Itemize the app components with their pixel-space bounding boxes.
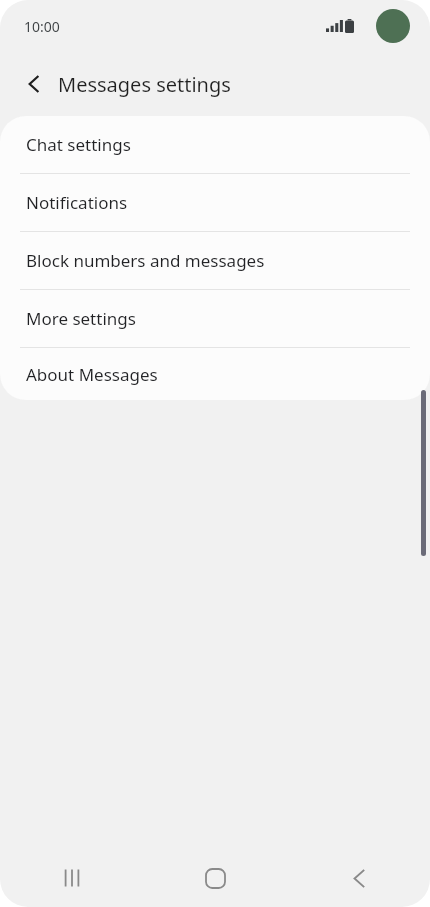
button[interactable]: Home [144, 849, 287, 907]
button[interactable]: Recents [0, 849, 144, 907]
staticText: Chat settings [26, 133, 131, 156]
staticText: Messages settings [58, 71, 231, 98]
staticText: About Messages [26, 363, 158, 386]
button[interactable]: Back [287, 849, 430, 907]
staticText: Block numbers and messages [26, 249, 265, 272]
button[interactable]: More settings [0, 290, 430, 347]
button[interactable]: Back [10, 60, 58, 108]
button[interactable]: Chat settings [0, 116, 430, 173]
staticText: More settings [26, 307, 136, 330]
button[interactable]: Block numbers and messages [0, 232, 430, 289]
button[interactable]: Notifications [0, 174, 430, 231]
staticText: 10:00 [24, 17, 60, 36]
staticText: Notifications [26, 191, 128, 214]
button[interactable]: About Messages [0, 348, 430, 400]
